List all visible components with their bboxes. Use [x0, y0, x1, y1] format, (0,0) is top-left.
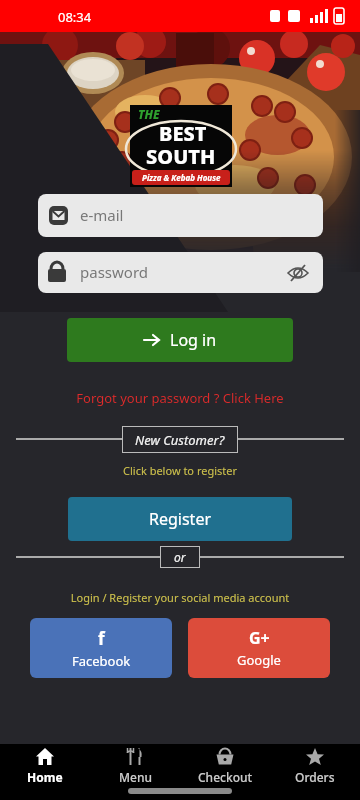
- staticText: e-mail: [80, 205, 124, 225]
- staticText: or: [174, 549, 186, 565]
- button[interactable]: Log in: [67, 318, 293, 362]
- button[interactable]: f: [30, 618, 172, 678]
- button[interactable]: Checkout: [180, 744, 270, 786]
- staticText: f: [98, 627, 105, 650]
- staticText: Google: [237, 651, 281, 669]
- button[interactable]: Home: [0, 744, 90, 786]
- staticText: Home: [27, 769, 63, 785]
- staticText: Facebook: [72, 652, 131, 670]
- button[interactable]: e-mail: [38, 194, 323, 237]
- staticText: Login / Register your social media accou…: [0, 590, 360, 605]
- staticText: password: [80, 262, 148, 282]
- staticText: THE: [138, 106, 160, 122]
- staticText: Checkout: [198, 769, 253, 785]
- staticText: Register: [149, 508, 212, 530]
- button[interactable]: password: [38, 252, 323, 293]
- button[interactable]: Register: [68, 497, 292, 541]
- staticText: 08:34: [58, 8, 92, 26]
- staticText: Pizza & Kebab House: [142, 172, 221, 183]
- button[interactable]: Orders: [270, 744, 360, 786]
- button[interactable]: Menu: [90, 744, 180, 786]
- staticText: Menu: [119, 769, 152, 785]
- staticText: Orders: [295, 769, 335, 785]
- staticText: Click below to register: [0, 463, 360, 478]
- button[interactable]: G+: [188, 618, 330, 678]
- button[interactable]: Forgot your password ? Click Here: [0, 389, 360, 407]
- staticText: BEST: [159, 120, 207, 147]
- staticText: G+: [249, 627, 270, 649]
- staticText: New Customer?: [135, 431, 225, 449]
- staticText: SOUTH: [146, 143, 216, 170]
- staticText: Log in: [170, 329, 217, 351]
